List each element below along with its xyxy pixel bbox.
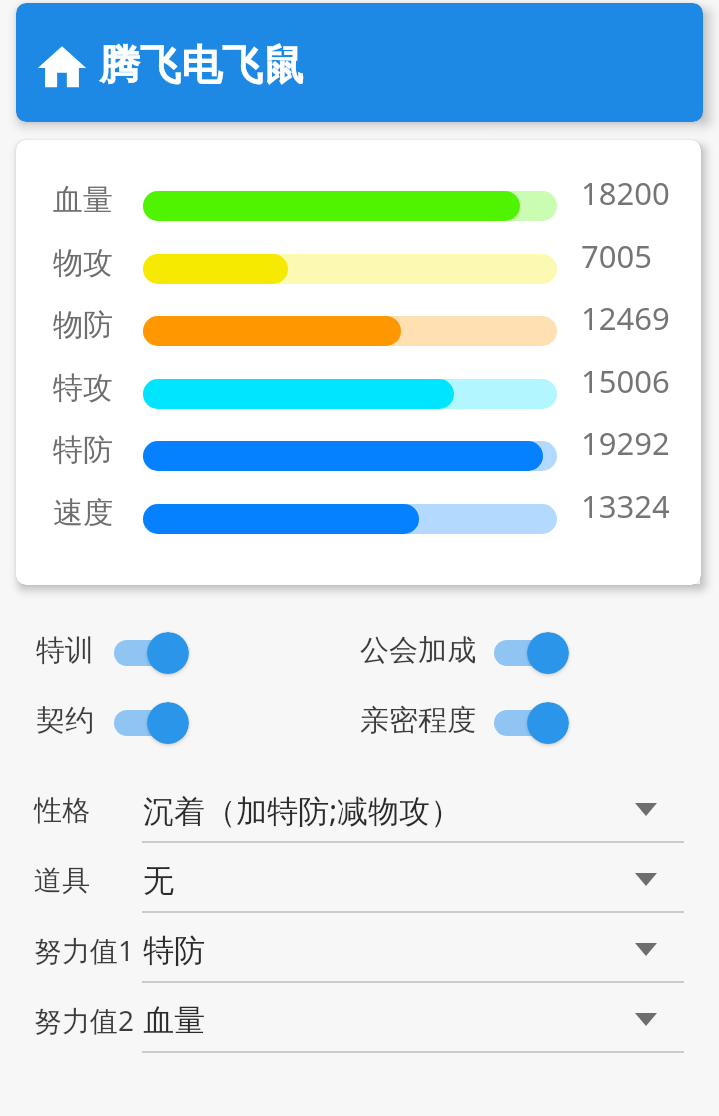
staticText: 腾飞电飞鼠 — [99, 40, 304, 92]
staticText: 性格 — [34, 793, 90, 828]
button[interactable] — [494, 710, 568, 736]
staticText: 15006 — [581, 360, 670, 402]
button[interactable] — [114, 710, 188, 736]
staticText: 12469 — [581, 297, 670, 339]
staticText: 公会加成 — [360, 632, 476, 669]
staticText: 道具 — [34, 863, 90, 898]
staticText: 18200 — [581, 172, 670, 214]
button[interactable]: 沉着（加特防;减物攻） — [143, 786, 623, 834]
staticText: 特攻 — [53, 369, 113, 407]
staticText: 血量 — [143, 1001, 205, 1040]
button[interactable]: 无 — [143, 856, 623, 904]
staticText: 亲密程度 — [360, 702, 476, 739]
staticText: 特防 — [143, 931, 205, 970]
staticText: 努力值2 — [34, 1001, 135, 1039]
staticText: 13324 — [581, 485, 670, 527]
staticText: 19292 — [581, 422, 670, 464]
staticText: 特训 — [36, 632, 94, 669]
staticText: 沉着（加特防;减物攻） — [143, 789, 462, 831]
button[interactable] — [114, 640, 188, 666]
staticText: 血量 — [53, 181, 113, 219]
staticText: 特防 — [53, 431, 113, 469]
staticText: 7005 — [581, 235, 652, 277]
button[interactable]: 血量 — [143, 996, 623, 1044]
staticText: 无 — [143, 861, 174, 900]
staticText: 速度 — [53, 494, 113, 532]
staticText: 物攻 — [53, 244, 113, 282]
button[interactable]: 特防 — [143, 926, 623, 974]
button[interactable]: 腾飞电飞鼠 — [16, 3, 703, 122]
staticText: 物防 — [53, 306, 113, 344]
staticText: 努力值1 — [34, 931, 135, 969]
staticText: 契约 — [36, 702, 94, 739]
button[interactable] — [494, 640, 568, 666]
